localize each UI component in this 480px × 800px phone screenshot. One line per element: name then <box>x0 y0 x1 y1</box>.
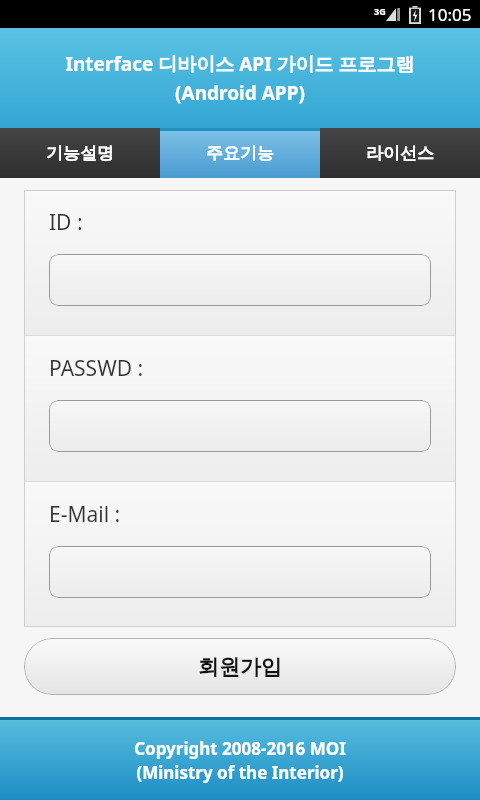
button[interactable]: Text input <box>49 400 431 452</box>
button[interactable]: 기능설명 <box>0 128 160 178</box>
button[interactable]: Text input <box>49 254 431 306</box>
button[interactable]: Text input <box>49 546 431 598</box>
staticText: 3G <box>374 5 386 17</box>
staticText: Copyright 2008-2016 MOI (Ministry of the… <box>0 737 480 784</box>
staticText: Interface 디바이스 API 가이드 프로그램 (Android APP… <box>10 51 470 106</box>
staticText: PASSWD : <box>49 354 144 383</box>
button[interactable]: 회원가입 <box>24 638 456 695</box>
staticText: 10:05 <box>428 3 472 26</box>
staticText: 라이선스 <box>366 143 434 164</box>
button[interactable]: 라이선스 <box>320 128 480 178</box>
staticText: ID : <box>49 208 83 237</box>
staticText: 회원가입 <box>198 654 282 680</box>
staticText: E-Mail : <box>49 500 121 529</box>
button[interactable]: 주요기능 <box>160 128 320 178</box>
staticText: 기능설명 <box>46 143 114 164</box>
staticText: 주요기능 <box>206 143 274 164</box>
